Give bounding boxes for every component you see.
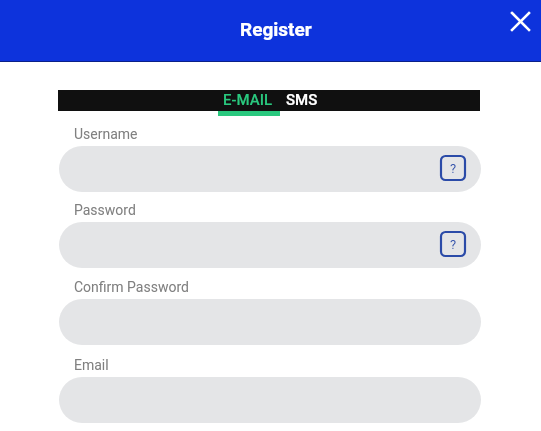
button[interactable]: Help	[441, 156, 465, 180]
button[interactable]	[59, 377, 481, 423]
staticText: Password	[74, 202, 136, 218]
button[interactable]: Close	[504, 5, 537, 38]
staticText: ?	[450, 161, 457, 176]
staticText: Email	[74, 357, 109, 373]
staticText: ?	[450, 237, 457, 252]
button[interactable]	[59, 299, 481, 345]
staticText: E-MAIL	[223, 91, 273, 109]
button[interactable]: E-MAIL	[223, 89, 273, 110]
button[interactable]: Help	[59, 222, 481, 268]
button[interactable]: Help	[59, 146, 481, 192]
staticText: Confirm Password	[74, 279, 189, 295]
button[interactable]: SMS	[286, 89, 318, 110]
staticText: Username	[74, 126, 138, 142]
staticText: Register	[240, 18, 312, 40]
button[interactable]: Help	[441, 232, 465, 256]
staticText: SMS	[286, 91, 318, 109]
